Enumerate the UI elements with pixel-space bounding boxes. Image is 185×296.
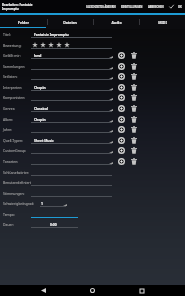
- button[interactable]: Benutzerdefiniert: [0, 177, 185, 188]
- staticText: Quell-Typen:: [3, 138, 23, 143]
- button[interactable]: EINSTELLUNGEN: [120, 5, 144, 9]
- staticText: 1: [41, 201, 43, 205]
- button[interactable]: Hinzufügen: [115, 61, 127, 72]
- button[interactable]: Hinzufügen: [115, 92, 127, 103]
- staticText: CustomGroup:: [3, 148, 27, 153]
- staticText: hmd: [34, 53, 42, 57]
- button[interactable]: Löschen: [128, 135, 140, 146]
- button[interactable]: Hinzufügen: [115, 50, 127, 61]
- staticText: Gefällt mir:: [3, 53, 21, 58]
- button[interactable]: Löschen: [128, 156, 140, 167]
- staticText: Schwierigkeitsgrad:: [3, 201, 35, 206]
- staticText: Audio: [111, 20, 122, 25]
- staticText: OK: [178, 5, 182, 9]
- staticText: ABBRECHEN: [148, 5, 164, 9]
- button[interactable]: Hinzufügen: [115, 71, 127, 82]
- staticText: Setlisten:: [3, 74, 18, 79]
- button[interactable]: Interpreten:: [0, 82, 185, 93]
- staticText: Tempo:: [3, 212, 15, 217]
- staticText: Komponisten:: [3, 95, 26, 100]
- staticText: Sammlungen:: [3, 64, 26, 69]
- button[interactable]: Löschen: [128, 71, 140, 82]
- button[interactable]: Löschen: [128, 114, 140, 125]
- button[interactable]: Audio: [93, 15, 139, 29]
- staticText: Bearbeiten: Fantaisie: [2, 3, 33, 7]
- button[interactable]: Bewertung:: [0, 40, 185, 51]
- staticText: MIDI: [158, 20, 167, 25]
- staticText: Schlüsselwörter:: [3, 170, 30, 175]
- button[interactable]: Bestätigen: [168, 3, 175, 10]
- staticText: Jahre:: [3, 127, 13, 132]
- button[interactable]: OK: [177, 5, 183, 9]
- staticText: Fantaisie Impromptu: [34, 32, 69, 36]
- staticText: Classical: [34, 106, 49, 110]
- staticText: Benutzerdefiniert: [3, 180, 31, 185]
- button[interactable]: Hinzufügen: [115, 103, 127, 114]
- button[interactable]: Genres:: [0, 103, 185, 114]
- button[interactable]: Löschen: [128, 61, 140, 72]
- staticText: Bewertung:: [3, 43, 22, 48]
- staticText: Chopin: [34, 117, 46, 121]
- button[interactable]: Tempo:: [0, 209, 185, 220]
- button[interactable]: Titel:: [0, 29, 185, 40]
- button[interactable]: Jahre:: [0, 124, 185, 135]
- staticText: Genres:: [3, 106, 16, 111]
- staticText: 0:00: [50, 222, 57, 226]
- button[interactable]: Hinzufügen: [115, 135, 127, 146]
- button[interactable]: Setlisten:: [0, 71, 185, 82]
- button[interactable]: Stimmungen:: [0, 188, 185, 199]
- button[interactable]: Hinzufügen: [115, 145, 127, 156]
- staticText: Dauer:: [3, 222, 14, 227]
- button[interactable]: Dauer:: [0, 219, 185, 230]
- staticText: Felder: [18, 20, 29, 25]
- button[interactable]: Sammlungen:: [0, 61, 185, 72]
- staticText: Titel:: [3, 32, 11, 37]
- button[interactable]: Tonarten:: [0, 156, 185, 167]
- staticText: Impromptu: [2, 7, 19, 11]
- staticText: Tonarten:: [3, 159, 19, 164]
- button[interactable]: Schwierigkeitsgrad:: [0, 198, 185, 209]
- button[interactable]: Alben:: [0, 114, 185, 125]
- staticText: Interpreten:: [3, 85, 23, 90]
- button[interactable]: Hinzufügen: [115, 114, 127, 125]
- button[interactable]: Zurück: [38, 285, 49, 296]
- button[interactable]: Löschen: [128, 92, 140, 103]
- button[interactable]: Dateien: [47, 15, 93, 29]
- button[interactable]: Löschen: [128, 124, 140, 135]
- staticText: Dateien: [63, 20, 77, 25]
- staticText: EINSTELLUNGEN: [121, 5, 143, 9]
- button[interactable]: MIDI: [139, 15, 185, 29]
- button[interactable]: Löschen: [128, 82, 140, 93]
- button[interactable]: ABBRECHEN: [147, 5, 165, 9]
- button[interactable]: Komponisten:: [0, 92, 185, 103]
- staticText: Stimmungen:: [3, 191, 25, 196]
- button[interactable]: Löschen: [128, 50, 140, 61]
- button[interactable]: Felder: [0, 15, 47, 29]
- button[interactable]: Gefällt mir:: [0, 50, 185, 61]
- staticText: Alben:: [3, 117, 14, 122]
- button[interactable]: Hinzufügen: [115, 124, 127, 135]
- button[interactable]: Startseite: [87, 285, 98, 296]
- button[interactable]: CustomGroup:: [0, 145, 185, 156]
- staticText: GLEICHZEITIG ÄNDERN: [86, 5, 116, 9]
- button[interactable]: Hinzufügen: [115, 156, 127, 167]
- staticText: Sheet Music: [34, 138, 54, 142]
- button[interactable]: Hinzufügen: [115, 82, 127, 93]
- button[interactable]: Löschen: [128, 103, 140, 114]
- button[interactable]: Löschen: [128, 145, 140, 156]
- staticText: Chopin: [34, 85, 46, 89]
- button[interactable]: GLEICHZEITIG ÄNDERN: [85, 5, 117, 9]
- button[interactable]: Übersicht: [136, 285, 147, 296]
- button[interactable]: Quell-Typen:: [0, 135, 185, 146]
- button[interactable]: Schlüsselwörter:: [0, 167, 185, 178]
